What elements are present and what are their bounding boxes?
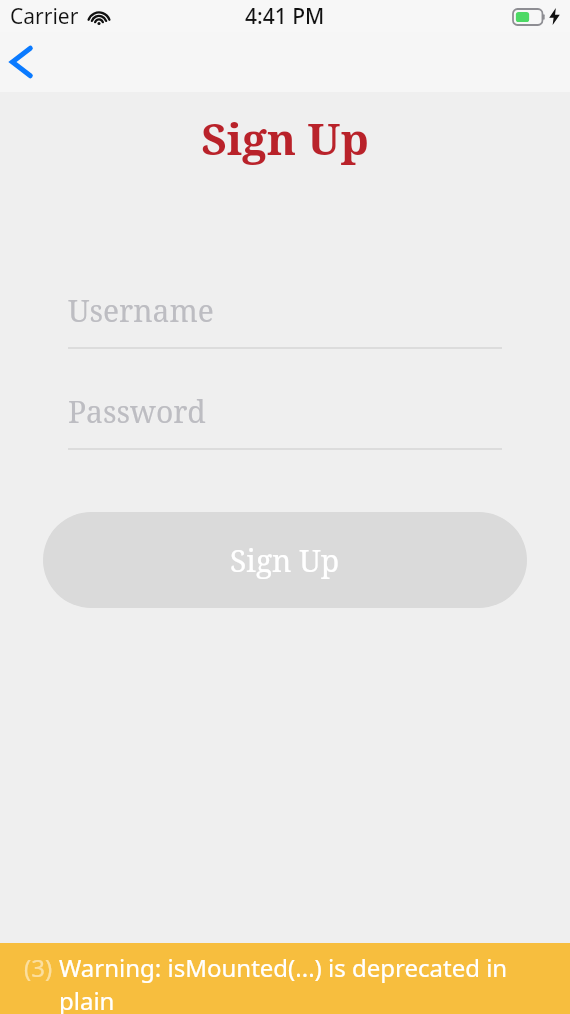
- staticText: Carrier: [10, 2, 79, 31]
- staticText: 4:41 PM: [245, 2, 325, 31]
- button[interactable]: Sign Up: [43, 512, 527, 608]
- button[interactable]: Back: [0, 33, 58, 91]
- staticText: Sign Up: [230, 540, 340, 581]
- staticText: Warning: isMounted(...) is deprecated in…: [59, 951, 562, 1014]
- staticText: Username: [68, 290, 214, 331]
- staticText: (3): [24, 951, 59, 984]
- button[interactable]: Username: [68, 290, 502, 349]
- staticText: Password: [68, 391, 206, 432]
- button[interactable]: (3): [0, 943, 570, 1014]
- staticText: Sign Up: [0, 108, 570, 168]
- button[interactable]: Password: [68, 391, 502, 450]
